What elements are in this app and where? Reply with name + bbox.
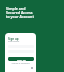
staticText: Simple and Secured Access to your Accoun… xyxy=(6,6,34,19)
staticText: Free forever xyxy=(8,40,20,43)
staticText: Sign up xyxy=(17,58,26,61)
button[interactable]: Sign up xyxy=(8,57,34,61)
button[interactable]: Already a member? xyxy=(5,62,36,65)
staticText: Already a member? xyxy=(11,62,30,65)
staticText: Sign up xyxy=(8,37,19,41)
